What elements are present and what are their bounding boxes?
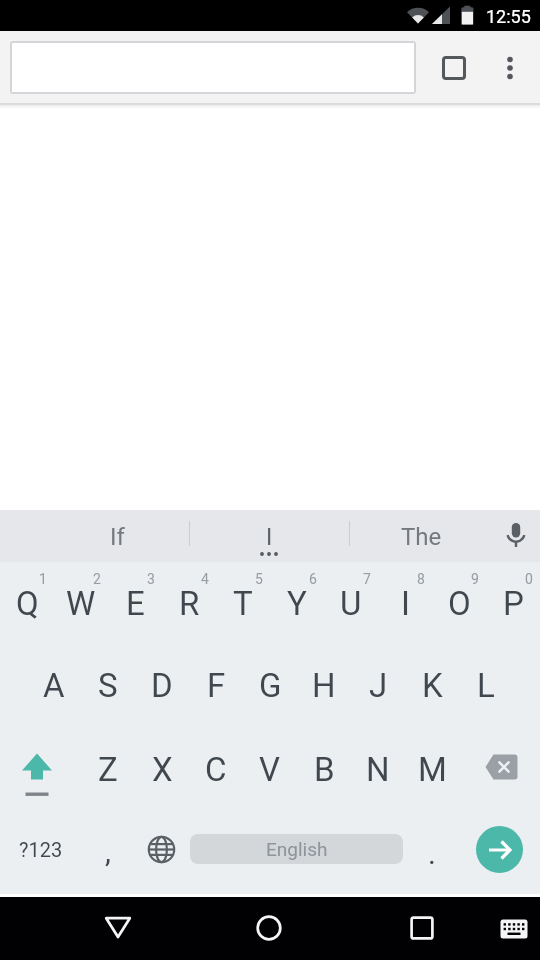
button[interactable]: . <box>406 813 458 893</box>
staticText: I <box>266 524 273 551</box>
button[interactable]: A <box>28 645 80 725</box>
button[interactable] <box>386 898 458 958</box>
staticText: 4 <box>201 571 209 587</box>
button[interactable] <box>464 727 540 807</box>
button[interactable]: The <box>351 511 491 563</box>
button[interactable] <box>134 809 188 889</box>
staticText: 8 <box>417 571 425 587</box>
staticText: J <box>369 666 388 705</box>
staticText: U <box>340 584 362 623</box>
staticText: T <box>233 584 253 623</box>
button[interactable]: K <box>406 645 458 725</box>
staticText: N <box>366 750 390 789</box>
staticText: M <box>418 750 447 789</box>
button[interactable]: T <box>217 563 269 643</box>
button[interactable]: F <box>190 645 242 725</box>
button[interactable]: Y <box>271 563 323 643</box>
staticText: ?123 <box>19 838 63 861</box>
staticText: G <box>259 666 282 705</box>
button[interactable]: I <box>190 515 348 559</box>
button[interactable]: Z <box>82 729 134 809</box>
button[interactable]: M <box>406 729 458 809</box>
staticText: D <box>151 666 173 705</box>
button[interactable] <box>3 736 71 816</box>
staticText: 2 <box>93 571 101 587</box>
button[interactable] <box>82 898 154 958</box>
button[interactable]: U <box>325 563 377 643</box>
staticText: 1 <box>39 571 47 587</box>
staticText: 5 <box>255 571 263 587</box>
button[interactable]: If <box>28 511 206 563</box>
button[interactable]: N <box>352 729 404 809</box>
staticText: V <box>259 750 281 789</box>
button[interactable]: P <box>487 563 539 643</box>
button[interactable]: B <box>298 729 350 809</box>
staticText: X <box>152 750 173 789</box>
button[interactable] <box>10 41 416 94</box>
staticText: 9 <box>471 571 479 587</box>
staticText: , <box>105 834 111 869</box>
staticText: C <box>205 750 227 789</box>
button[interactable]: D <box>136 645 188 725</box>
staticText: K <box>422 666 443 705</box>
button[interactable]: X <box>136 729 188 809</box>
button[interactable]: ?123 <box>6 809 76 889</box>
staticText: W <box>66 584 96 623</box>
button[interactable]: , <box>82 811 134 891</box>
staticText: P <box>503 584 524 623</box>
staticText: The <box>401 523 442 551</box>
staticText: Z <box>98 750 118 789</box>
button[interactable]: W <box>55 563 107 643</box>
button[interactable] <box>494 44 526 92</box>
staticText: Q <box>16 584 39 623</box>
button[interactable]: Q <box>1 563 53 643</box>
staticText: L <box>477 666 495 705</box>
staticText: 6 <box>309 571 317 587</box>
button[interactable]: R <box>163 563 215 643</box>
button[interactable]: C <box>190 729 242 809</box>
staticText: S <box>98 666 118 705</box>
staticText: 3 <box>147 571 155 587</box>
button[interactable]: S <box>82 645 134 725</box>
staticText: Y <box>287 584 307 623</box>
staticText: B <box>314 750 335 789</box>
button[interactable] <box>489 899 539 959</box>
button[interactable]: O <box>433 563 485 643</box>
button[interactable]: L <box>460 645 512 725</box>
staticText: . <box>428 836 436 871</box>
staticText: 12:55 <box>486 6 531 27</box>
button[interactable]: V <box>244 729 296 809</box>
staticText: R <box>179 584 200 623</box>
staticText: I <box>401 584 410 623</box>
staticText: E <box>126 584 145 623</box>
button[interactable]: I <box>379 563 431 643</box>
staticText: A <box>43 666 65 705</box>
staticText: 7 <box>363 571 371 587</box>
staticText: 0 <box>525 571 533 587</box>
button[interactable] <box>495 509 537 561</box>
button[interactable]: G <box>244 645 296 725</box>
button[interactable] <box>233 898 305 958</box>
staticText: If <box>110 523 125 551</box>
staticText: O <box>448 584 471 623</box>
staticText: H <box>312 666 336 705</box>
button[interactable] <box>434 44 474 92</box>
button[interactable] <box>476 826 523 873</box>
staticText: English <box>266 838 328 860</box>
button[interactable]: E <box>109 563 161 643</box>
button[interactable]: H <box>298 645 350 725</box>
button[interactable]: English <box>190 834 403 864</box>
button[interactable]: J <box>352 645 404 725</box>
staticText: F <box>207 666 226 705</box>
